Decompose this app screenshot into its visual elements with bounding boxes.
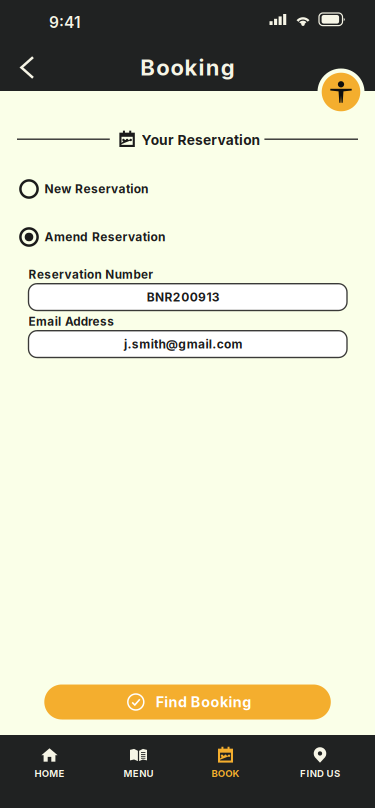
staticText: Your Reservation [141,132,260,148]
staticText: 9:41 [49,13,81,32]
staticText: BOOK [212,768,239,779]
button[interactable]: Find Booking [44,684,331,719]
button[interactable]: HOME [14,747,84,793]
button[interactable]: BOOK [190,747,260,793]
button[interactable]: j.smith@gmail.com [28,331,347,357]
button[interactable]: Back [4,45,48,89]
staticText: Amend Reservation [44,230,165,244]
staticText: Email Address [28,314,114,329]
staticText: Reservation Number [28,267,153,282]
button[interactable]: Accessibility options [317,68,364,115]
staticText: HOME [35,768,64,779]
staticText: FIND US [300,768,340,779]
staticText: Find Booking [156,693,251,711]
button[interactable]: FIND US [285,747,355,793]
staticText: Booking [140,54,235,81]
staticText: BNR200913 [147,290,220,304]
button[interactable]: New Reservation [19,174,239,204]
button[interactable]: MENU [103,747,173,793]
staticText: MENU [124,768,153,779]
button[interactable]: BNR200913 [28,284,347,310]
button[interactable]: Amend Reservation [19,222,239,252]
staticText: New Reservation [44,182,148,196]
staticText: j.smith@gmail.com [124,337,242,351]
